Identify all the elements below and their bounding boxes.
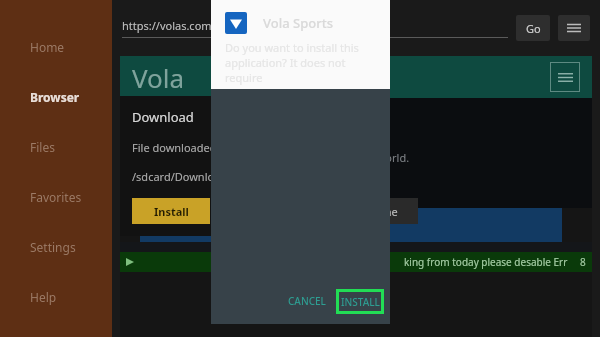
button[interactable]: Menu: [558, 15, 590, 41]
button[interactable]: Install: [132, 198, 210, 224]
staticText: Done: [370, 204, 398, 219]
staticText: Install: [154, 204, 189, 219]
button[interactable]: INSTALL: [336, 289, 384, 314]
staticText: File downloaded: [132, 140, 217, 155]
staticText: Vola: [132, 60, 185, 95]
staticText: king from today please desable Err: [404, 255, 568, 269]
button[interactable]: CANCEL: [280, 288, 334, 314]
staticText: CANCEL: [288, 294, 326, 308]
staticText: 8: [580, 255, 586, 269]
staticText: Live sports from around the world.: [230, 150, 410, 165]
button[interactable]: Settings: [0, 226, 112, 268]
staticText: application? It does not require: [225, 55, 380, 85]
staticText: Settings: [30, 239, 76, 255]
button[interactable]: Done: [350, 198, 418, 224]
button[interactable]: https://volas.com/app: [122, 13, 508, 43]
staticText: Favorites: [30, 189, 82, 205]
staticText: Home: [30, 39, 65, 55]
button[interactable]: Browser: [0, 76, 112, 118]
button[interactable]: Files: [0, 126, 112, 168]
staticText: Download: [132, 108, 194, 126]
staticText: Help: [30, 289, 57, 305]
button[interactable]: Go: [516, 15, 550, 41]
staticText: Go: [526, 21, 541, 36]
staticText: Browser: [30, 89, 80, 105]
staticText: Files: [30, 139, 55, 155]
staticText: 6.5: [140, 214, 173, 237]
button[interactable]: Help: [0, 276, 112, 318]
button[interactable]: Home: [0, 26, 112, 68]
staticText: Do you want to install this: [225, 40, 359, 55]
staticText: INSTALL: [341, 295, 380, 309]
staticText: Vola Sports: [263, 14, 333, 32]
staticText: /sdcard/Download: [132, 169, 228, 184]
button[interactable]: Favorites: [0, 176, 112, 218]
staticText: https://volas.com/app: [122, 18, 236, 33]
button[interactable]: Site menu: [550, 62, 580, 92]
